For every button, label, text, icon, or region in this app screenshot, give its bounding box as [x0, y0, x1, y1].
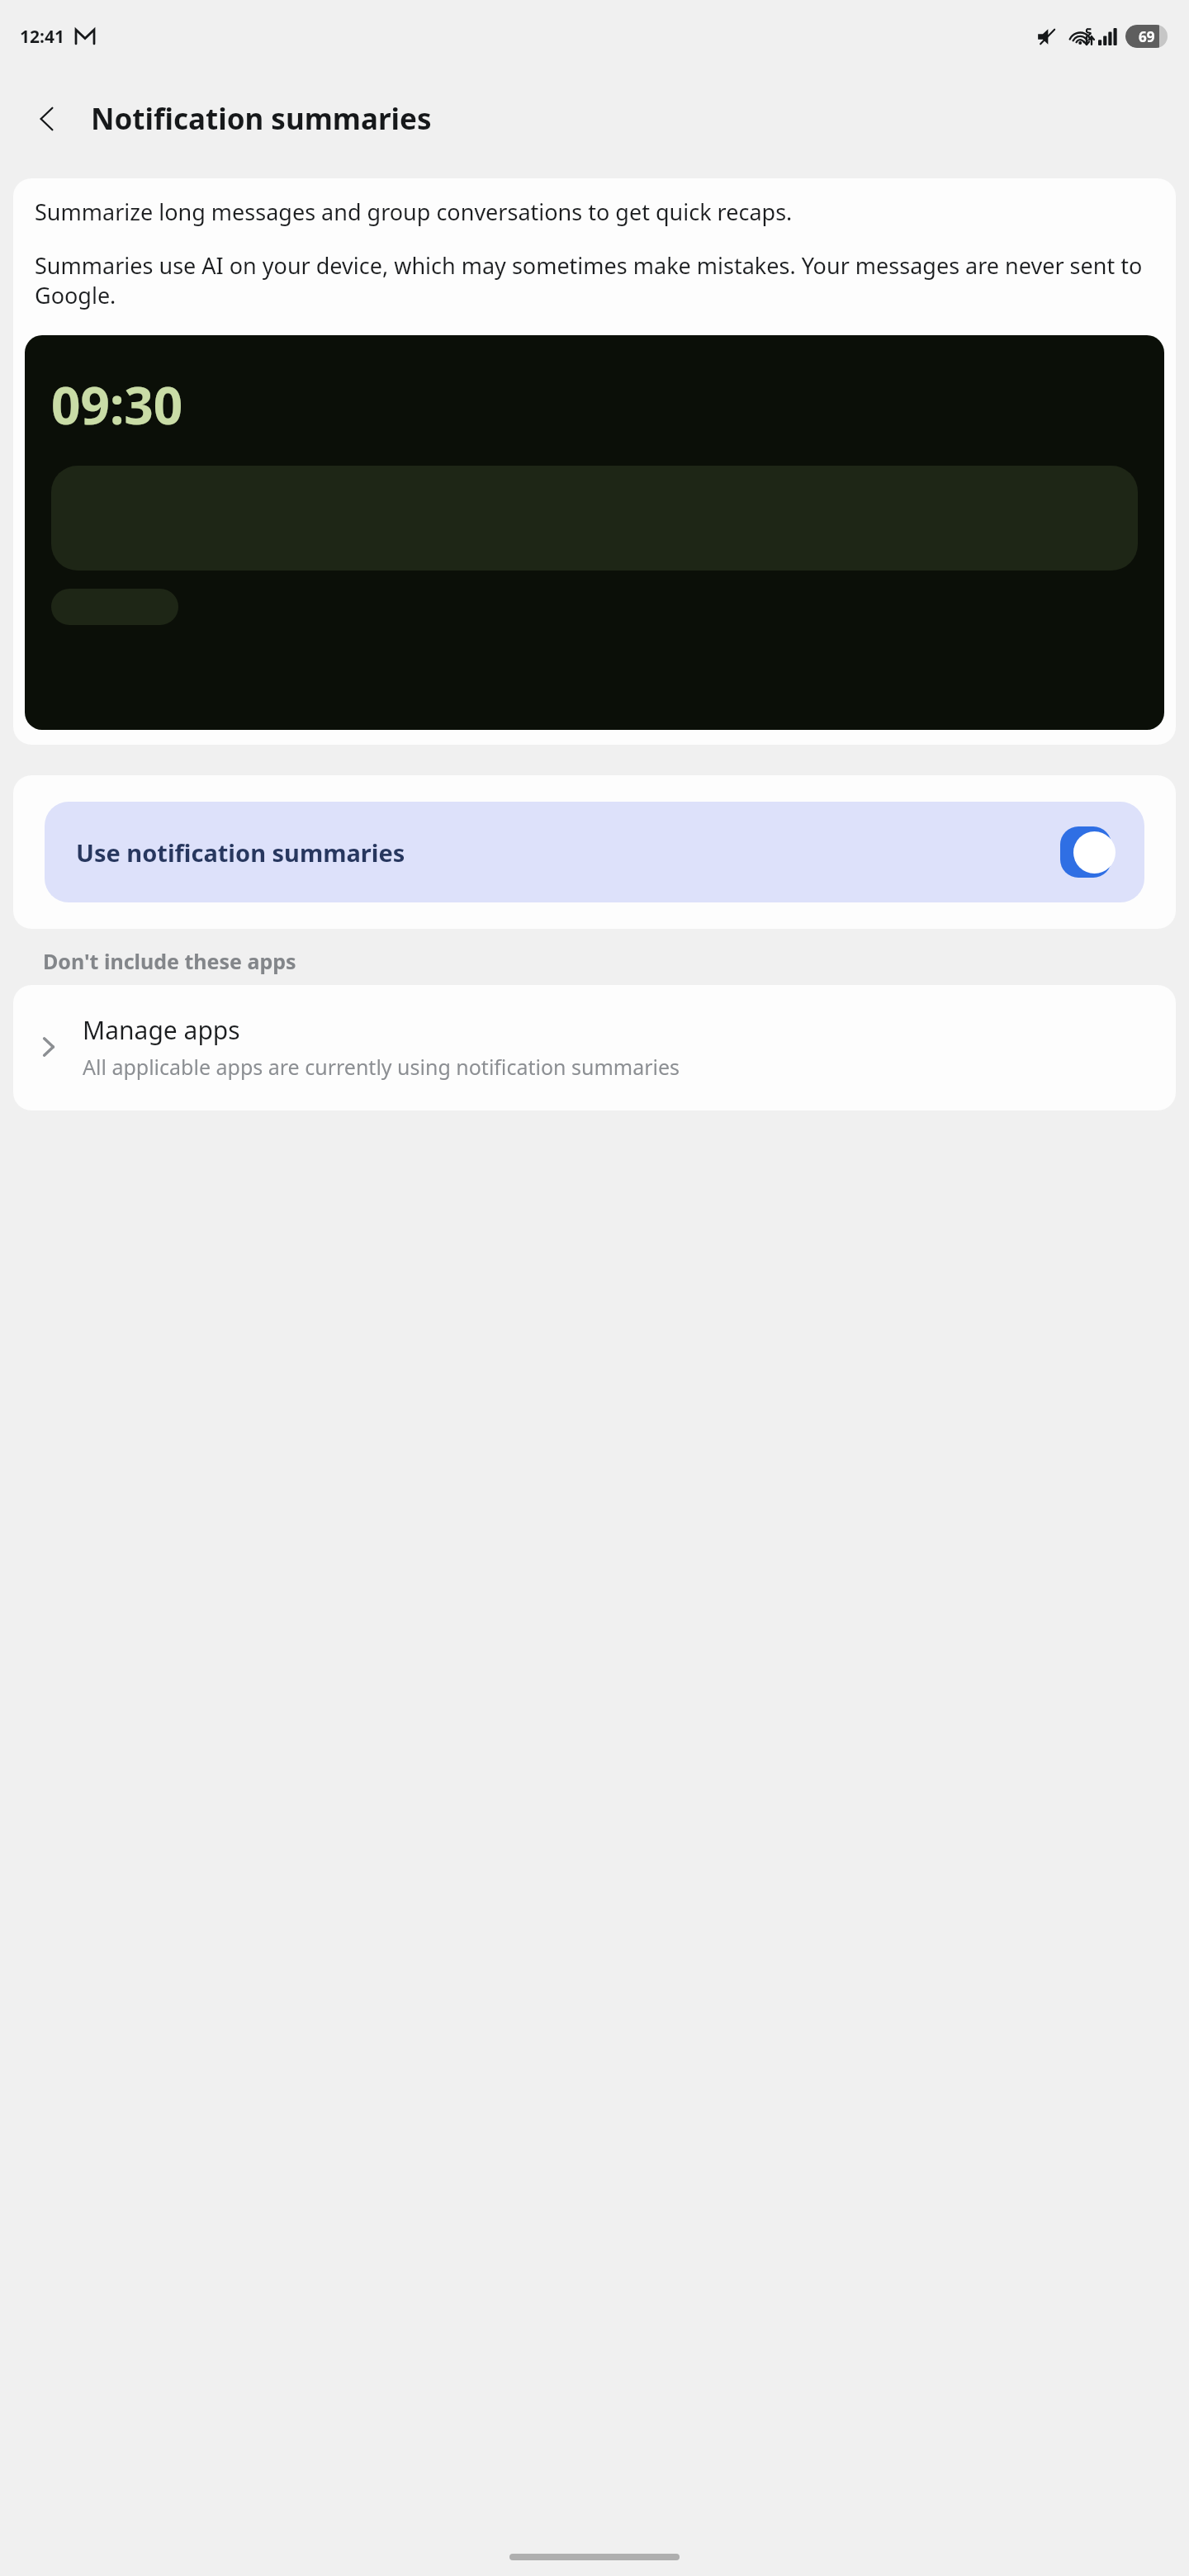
- staticText: Summaries use AI on your device, which m…: [35, 250, 1154, 310]
- staticText: 09:30: [51, 370, 183, 439]
- staticText: All applicable apps are currently using …: [83, 1053, 680, 1081]
- button[interactable]: Manage apps: [13, 985, 1176, 1110]
- staticText: Don't include these apps: [43, 947, 296, 975]
- staticText: Use notification summaries: [76, 836, 1040, 869]
- staticText: Manage apps: [83, 1013, 240, 1047]
- button[interactable]: Back: [18, 89, 78, 149]
- staticText: 69: [1139, 27, 1155, 46]
- button[interactable]: Use notification summaries: [45, 802, 1144, 902]
- staticText: Notification summaries: [91, 99, 432, 139]
- staticText: 12:41: [20, 25, 64, 49]
- staticText: Summarize long messages and group conver…: [35, 197, 793, 227]
